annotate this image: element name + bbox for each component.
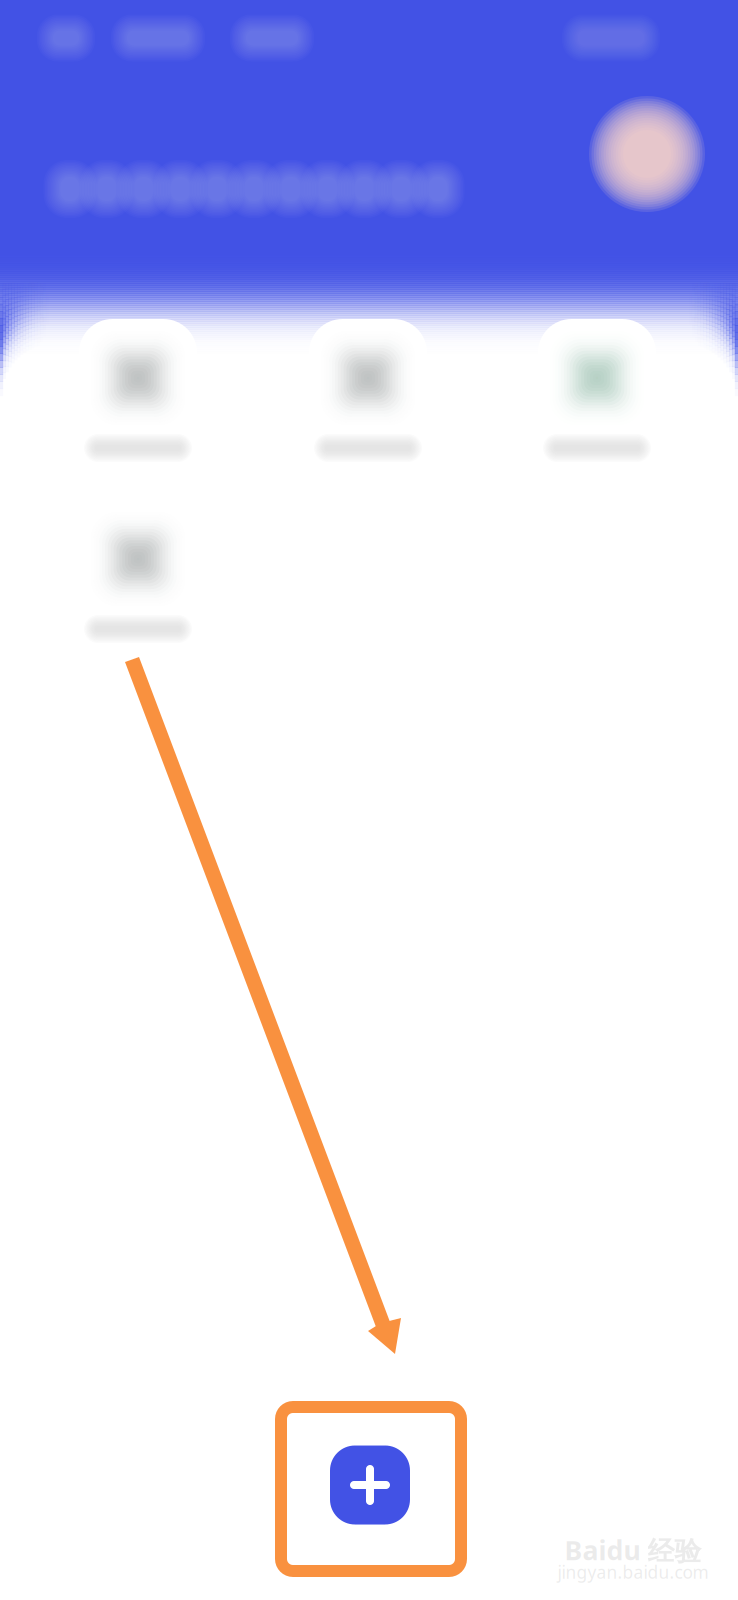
staticText: jingyan.baidu.com — [557, 1560, 708, 1583]
button[interactable]: Shortcut — [0, 0, 738, 1600]
button[interactable]: Shortcut — [0, 0, 738, 1600]
staticText: Baidu 经验 — [564, 1532, 701, 1568]
button[interactable]: Shortcut — [0, 0, 738, 1600]
button[interactable]: Shortcut — [0, 0, 738, 1600]
button[interactable]: Add — [324, 1439, 416, 1531]
